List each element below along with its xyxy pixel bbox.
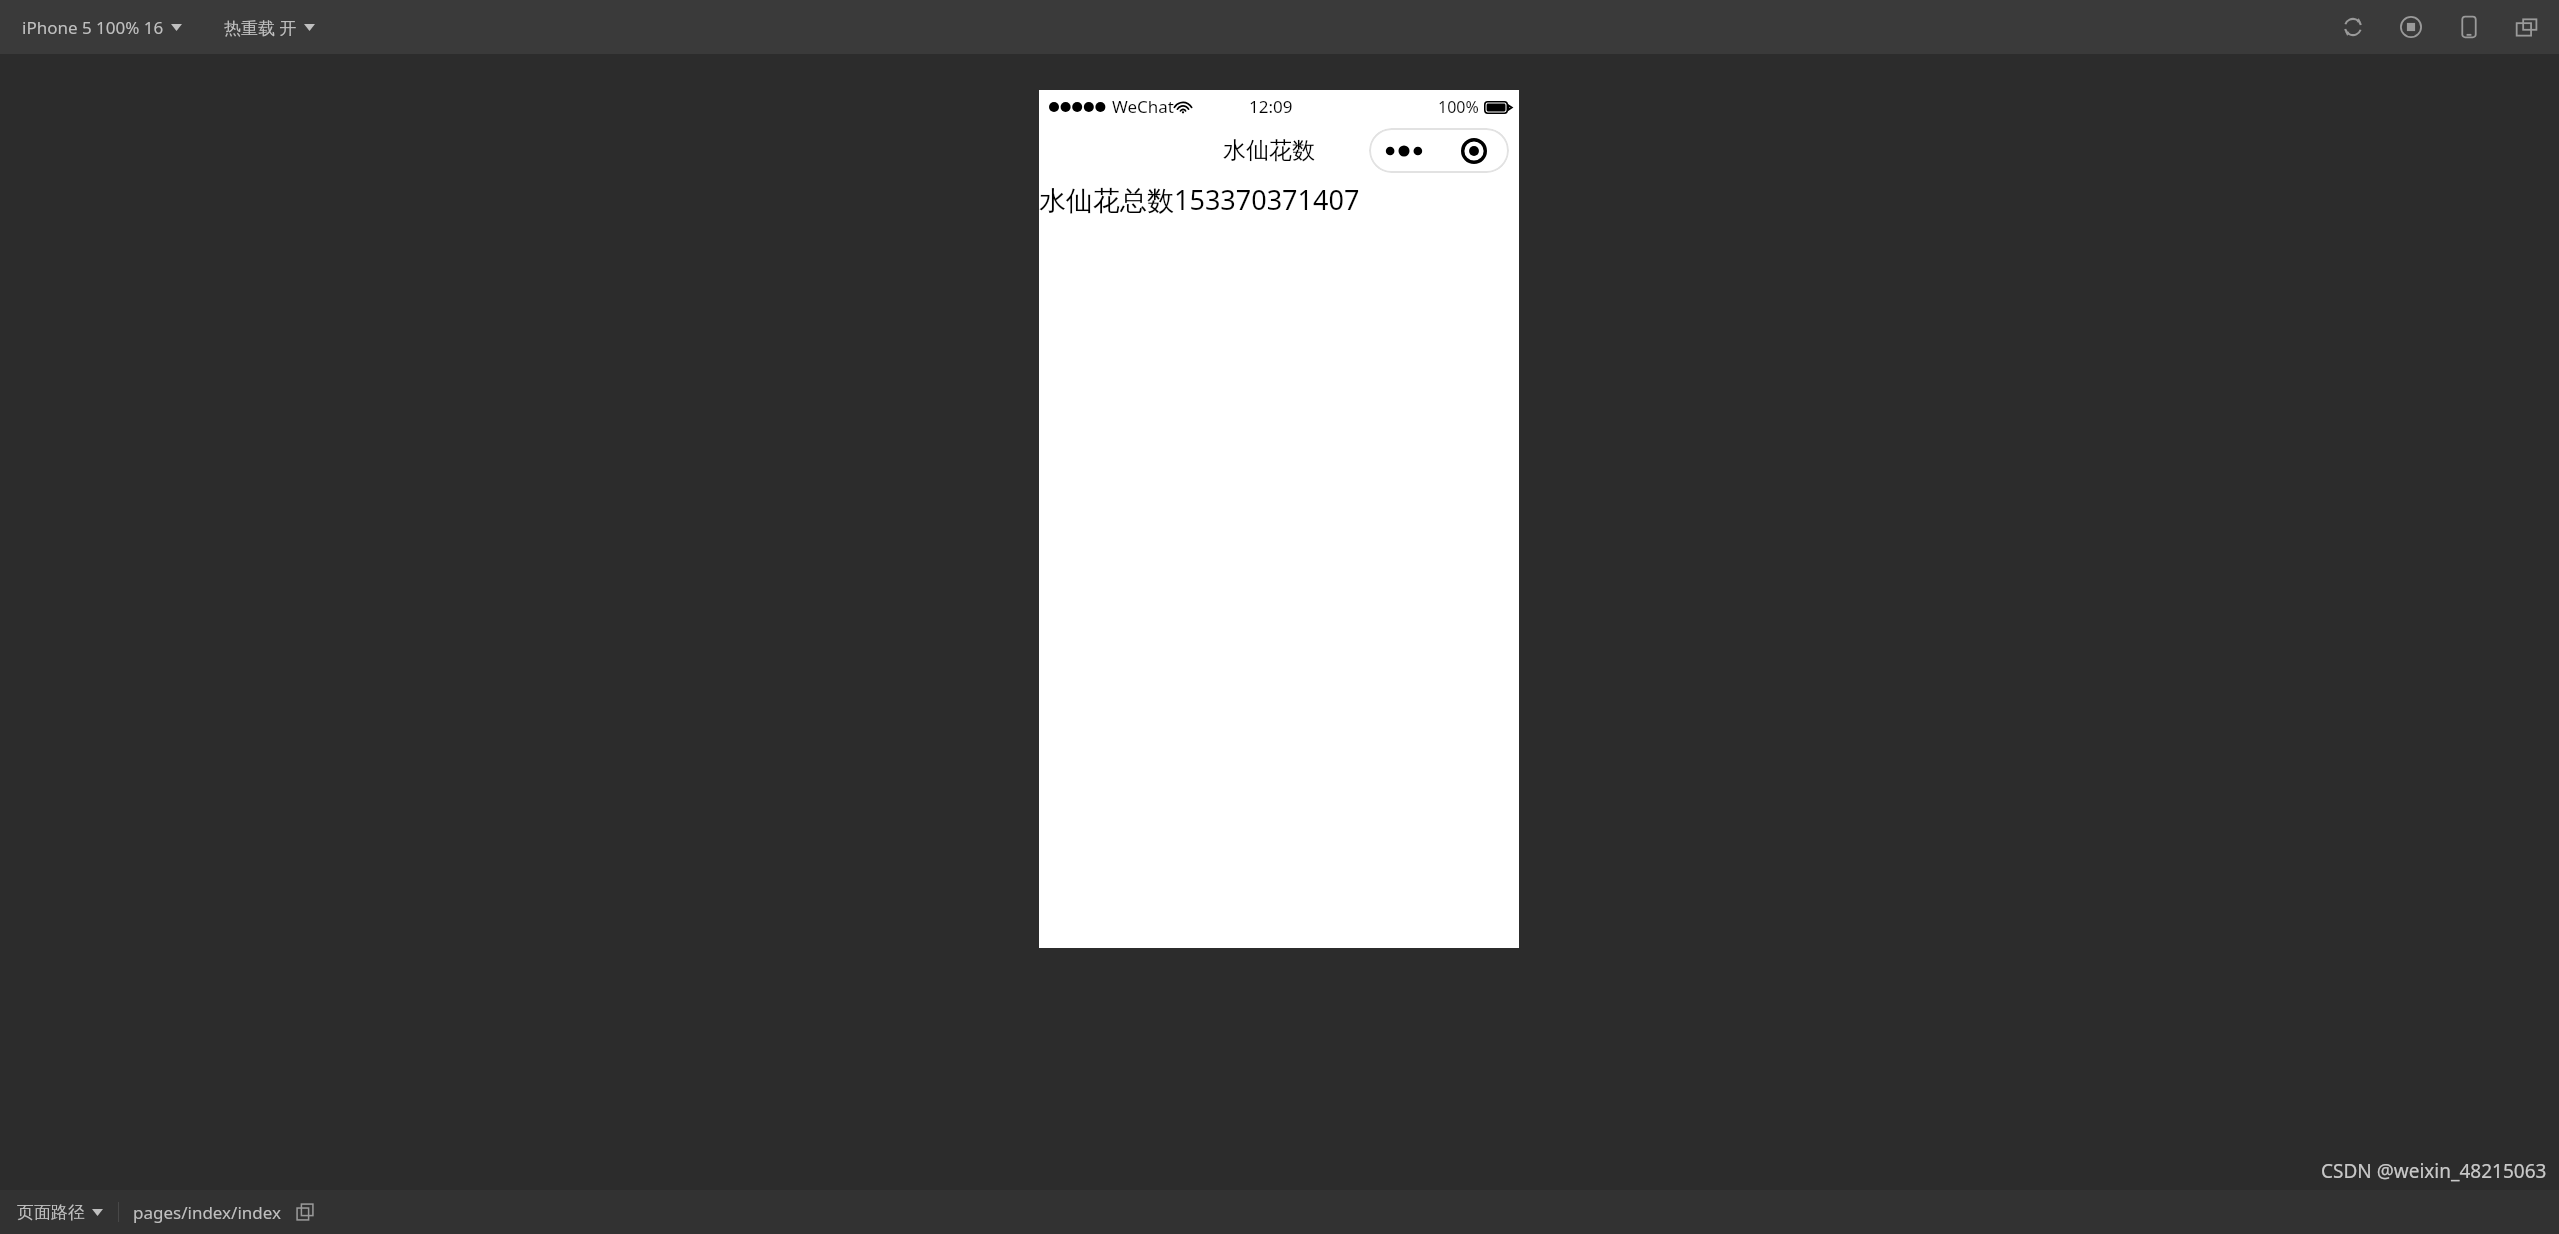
staticText: WeChat	[1112, 95, 1174, 118]
button[interactable]: iPhone 5 100% 16	[18, 10, 186, 45]
staticText: 水仙花数	[1223, 136, 1315, 165]
button[interactable]: Stop recording	[2393, 9, 2429, 45]
button[interactable]: Menu and close	[1369, 128, 1509, 173]
button[interactable]: Refresh	[2335, 9, 2371, 45]
staticText: 热重载 开	[224, 16, 297, 39]
button[interactable]: Detach window	[2509, 9, 2545, 45]
staticText: iPhone 5 100% 16	[22, 16, 164, 39]
button[interactable]: Device	[2451, 9, 2487, 45]
staticText: 12:09	[1249, 95, 1293, 118]
button[interactable]: Copy path	[292, 1199, 318, 1225]
staticText: 页面路径	[17, 1202, 85, 1223]
staticText: 100%	[1438, 96, 1479, 118]
button[interactable]: pages/index/index	[133, 1201, 282, 1224]
staticText: 水仙花总数153370371407	[1039, 181, 1360, 218]
staticText: CSDN @weixin_48215063	[2321, 1158, 2547, 1184]
button[interactable]: 页面路径	[14, 1197, 106, 1228]
button[interactable]: 热重载 开	[220, 10, 319, 45]
